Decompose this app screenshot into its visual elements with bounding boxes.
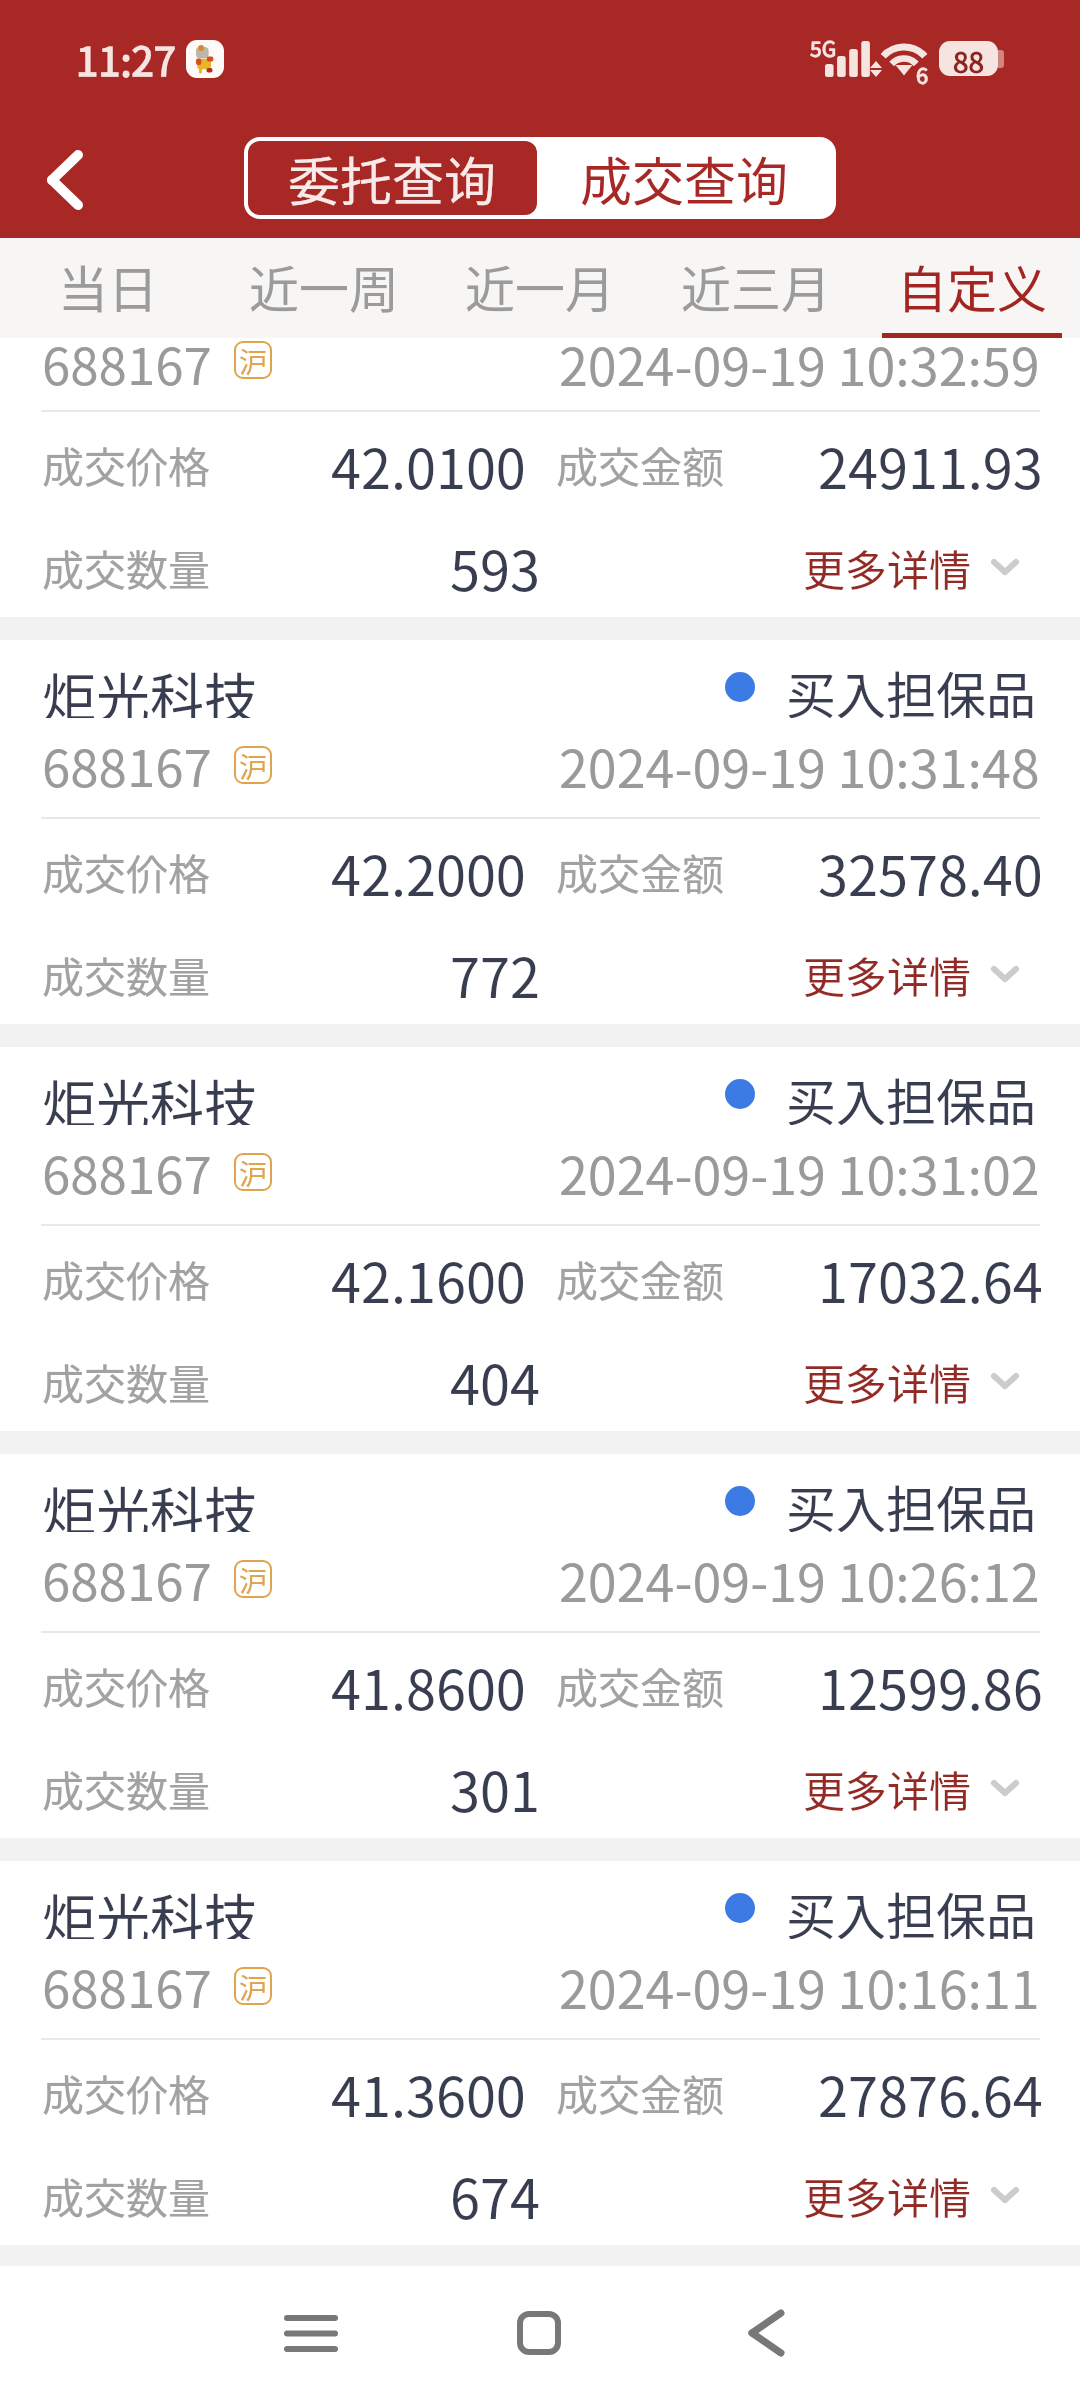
staticText: 成交数量 xyxy=(42,2165,211,2226)
staticText: 成交查询 xyxy=(580,141,789,215)
staticText: 成交价格 xyxy=(42,1248,211,1309)
button[interactable]: Recent apps xyxy=(256,2278,366,2388)
staticText: 2024-09-19 10:16:11 xyxy=(559,1949,1040,2024)
staticText: 32578.40 xyxy=(818,833,1043,911)
button[interactable]: 更多详情 xyxy=(803,1738,1019,1838)
staticText: 更多详情 xyxy=(803,944,972,1005)
staticText: 2024-09-19 10:26:12 xyxy=(559,1542,1040,1617)
staticText: 42.0100 xyxy=(331,426,526,504)
button[interactable]: Home xyxy=(484,2278,594,2388)
button[interactable]: 成交查询 xyxy=(537,141,832,215)
staticText: 买入担保品 xyxy=(786,656,1036,718)
staticText: 688167 xyxy=(42,728,212,802)
staticText: 沪 xyxy=(239,746,268,784)
staticText: 593 xyxy=(450,528,540,606)
staticText: 买入担保品 xyxy=(786,1877,1036,1939)
staticText: 买入担保品 xyxy=(786,1063,1036,1125)
staticText: 炬光科技 xyxy=(42,1877,258,1939)
staticText: 41.3600 xyxy=(331,2054,526,2132)
button[interactable]: 炬光科技 xyxy=(0,640,1080,1024)
button[interactable]: 近一月 xyxy=(432,238,648,338)
button[interactable]: 炬光科技 xyxy=(0,1454,1080,1838)
staticText: 404 xyxy=(450,1342,540,1420)
staticText: 沪 xyxy=(239,1153,268,1191)
button[interactable]: 炬光科技 xyxy=(0,1861,1080,2245)
staticText: 成交数量 xyxy=(42,537,211,598)
staticText: 27876.64 xyxy=(818,2054,1043,2132)
staticText: 成交价格 xyxy=(42,2062,211,2123)
staticText: 6 xyxy=(916,58,929,90)
button[interactable]: 炬光科技 xyxy=(0,1047,1080,1431)
staticText: 41.8600 xyxy=(331,1647,526,1725)
staticText: 买入担保品 xyxy=(786,1470,1036,1532)
staticText: 688167 xyxy=(42,1542,212,1616)
staticText: 更多详情 xyxy=(803,1758,972,1819)
staticText: 成交金额 xyxy=(556,841,725,902)
button[interactable]: 委托查询 xyxy=(248,141,537,215)
staticText: 委托查询 xyxy=(288,141,497,215)
staticText: 688167 xyxy=(42,1135,212,1209)
staticText: 成交数量 xyxy=(42,1758,211,1819)
staticText: 沪 xyxy=(239,1560,268,1598)
staticText: 688167 xyxy=(42,326,212,393)
staticText: 更多详情 xyxy=(803,1351,972,1412)
staticText: 炬光科技 xyxy=(42,1470,258,1532)
staticText: 24911.93 xyxy=(818,426,1043,504)
staticText: 沪 xyxy=(239,341,268,379)
staticText: 成交金额 xyxy=(556,1248,725,1309)
staticText: 成交金额 xyxy=(556,2062,725,2123)
button[interactable]: 更多详情 xyxy=(803,924,1019,1024)
staticText: 近一月 xyxy=(465,250,615,322)
staticText: 2024-09-19 10:32:59 xyxy=(559,326,1040,393)
button[interactable]: 近一周 xyxy=(216,238,432,338)
staticText: 12599.86 xyxy=(818,1647,1043,1725)
staticText: 成交价格 xyxy=(42,841,211,902)
button[interactable]: 更多详情 xyxy=(803,1331,1019,1431)
button[interactable]: 当日 xyxy=(0,238,216,338)
staticText: 自定义 xyxy=(897,250,1047,322)
staticText: 近三月 xyxy=(681,250,831,322)
button[interactable]: 近三月 xyxy=(648,238,864,338)
staticText: 674 xyxy=(450,2156,540,2234)
staticText: 5G xyxy=(810,33,837,63)
staticText: 17032.64 xyxy=(818,1240,1043,1318)
staticText: 成交金额 xyxy=(556,1655,725,1716)
button[interactable]: 更多详情 xyxy=(803,2145,1019,2245)
staticText: 成交价格 xyxy=(42,434,211,495)
staticText: 更多详情 xyxy=(803,537,972,598)
staticText: 炬光科技 xyxy=(42,656,258,718)
button[interactable]: 自定义 xyxy=(864,238,1080,338)
staticText: 炬光科技 xyxy=(42,1063,258,1125)
button[interactable]: Back xyxy=(16,126,114,234)
staticText: 11:27 xyxy=(76,30,176,88)
staticText: 42.2000 xyxy=(331,833,526,911)
staticText: 成交金额 xyxy=(556,434,725,495)
staticText: 成交数量 xyxy=(42,1351,211,1412)
button[interactable]: 688167 xyxy=(0,338,1080,617)
staticText: 2024-09-19 10:31:02 xyxy=(559,1135,1040,1210)
staticText: 成交数量 xyxy=(42,944,211,1005)
staticText: 42.1600 xyxy=(331,1240,526,1318)
staticText: 沪 xyxy=(239,1967,268,2005)
staticText: 2024-09-19 10:31:48 xyxy=(559,728,1040,803)
staticText: 当日 xyxy=(58,250,158,322)
staticText: 772 xyxy=(450,935,540,1013)
staticText: 688167 xyxy=(42,1949,212,2023)
staticText: 近一周 xyxy=(249,250,399,322)
button[interactable]: 更多详情 xyxy=(803,517,1019,617)
staticText: 301 xyxy=(450,1749,540,1827)
staticText: 88 xyxy=(953,41,985,76)
staticText: 成交价格 xyxy=(42,1655,211,1716)
staticText: 更多详情 xyxy=(803,2165,972,2226)
button[interactable]: Back xyxy=(711,2278,821,2388)
